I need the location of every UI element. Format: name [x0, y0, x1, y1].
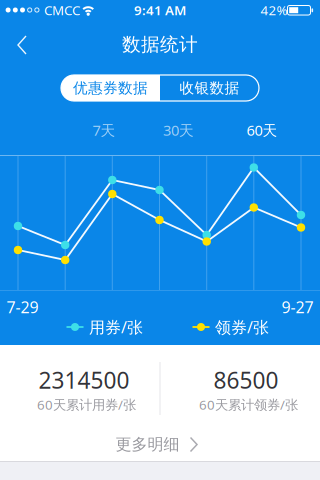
staticText: 7天: [92, 120, 115, 140]
staticText: 用券/张: [89, 316, 143, 338]
button[interactable]: 60天: [239, 118, 285, 142]
staticText: 收银数据: [179, 79, 239, 97]
staticText: 42%: [260, 1, 287, 19]
staticText: 优惠券数据: [73, 79, 148, 97]
staticText: 60天累计用券/张: [37, 396, 136, 413]
button[interactable]: 收银数据: [160, 75, 259, 101]
staticText: 领券/张: [215, 316, 269, 338]
staticText: 86500: [213, 365, 278, 395]
button[interactable]: 7天: [84, 118, 124, 142]
staticText: 60天累计领券/张: [199, 396, 298, 413]
staticText: 7-29: [6, 296, 38, 318]
button[interactable]: [0, 20, 44, 64]
button[interactable]: 更多明细: [0, 428, 317, 461]
button[interactable]: 30天: [155, 118, 201, 142]
staticText: 30天: [163, 120, 194, 140]
staticText: 更多明细: [115, 435, 179, 454]
staticText: 60天: [246, 120, 277, 140]
staticText: 9:41 AM: [134, 1, 186, 19]
button[interactable]: 优惠券数据: [61, 75, 160, 101]
staticText: 数据统计: [122, 33, 198, 56]
staticText: CMCC: [44, 1, 80, 19]
staticText: 2314500: [38, 365, 129, 395]
staticText: 9-27: [281, 296, 313, 318]
